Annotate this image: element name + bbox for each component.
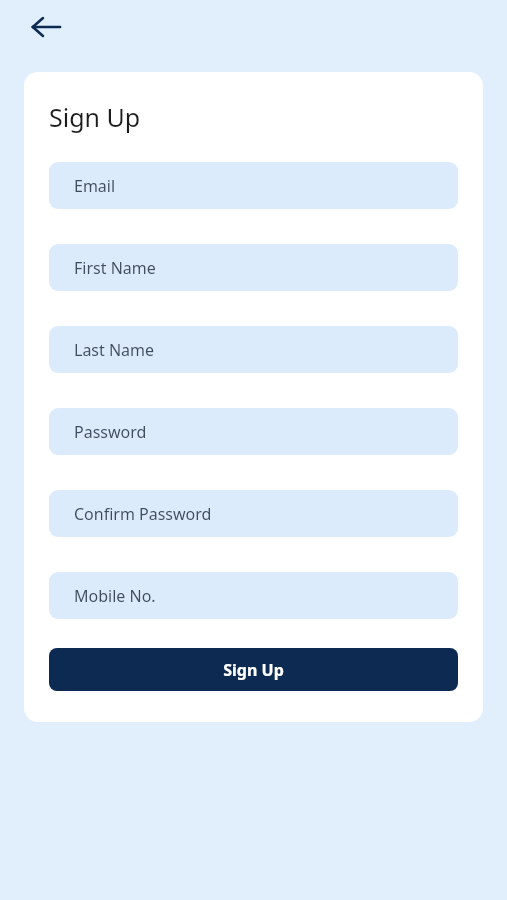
button[interactable]: First Name <box>49 244 458 291</box>
button[interactable]: Confirm Password <box>49 490 458 537</box>
staticText: Mobile No. <box>74 585 156 607</box>
staticText: Confirm Password <box>74 503 212 525</box>
button[interactable]: Mobile No. <box>49 572 458 619</box>
button[interactable]: Sign Up <box>49 648 458 691</box>
staticText: Sign Up <box>223 659 284 681</box>
staticText: Sign Up <box>49 100 141 134</box>
staticText: First Name <box>74 257 156 279</box>
button[interactable]: Email <box>49 162 458 209</box>
staticText: Last Name <box>74 339 155 361</box>
staticText: Email <box>74 175 116 197</box>
button[interactable]: Password <box>49 408 458 455</box>
button[interactable]: Last Name <box>49 326 458 373</box>
staticText: Password <box>74 421 147 443</box>
button[interactable]: Back <box>24 5 68 49</box>
